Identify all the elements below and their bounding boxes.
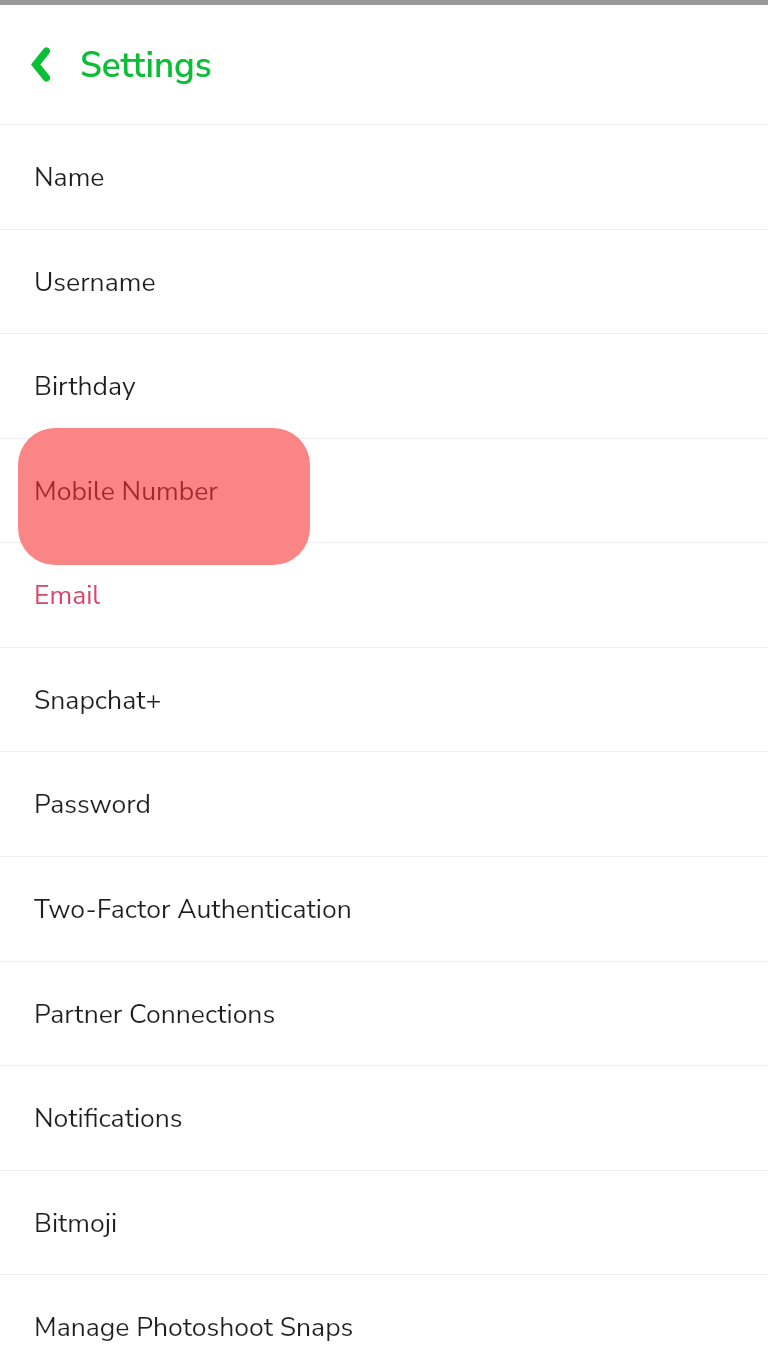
staticText: Two-Factor Authentication [34,891,352,927]
staticText: Settings [80,42,212,90]
staticText: Email [34,577,101,613]
button[interactable]: Snapchat+ [0,647,768,752]
staticText: Username [34,264,156,300]
staticText: Notifications [34,1100,183,1136]
button[interactable]: Username [0,229,768,334]
staticText: Birthday [34,368,136,404]
staticText: Mobile Number [34,473,218,509]
staticText: Bitmoji [34,1205,118,1241]
button[interactable]: Partner Connections [0,961,768,1066]
staticText: Snapchat+ [34,682,162,718]
staticText: Manage Photoshoot Snaps [34,1309,354,1345]
button[interactable]: Bitmoji [0,1170,768,1275]
staticText: Password [34,786,152,822]
button[interactable]: Password [0,751,768,856]
button[interactable]: Manage Photoshoot Snaps [0,1274,768,1365]
staticText: Partner Connections [34,996,276,1032]
button[interactable]: Notifications [0,1065,768,1170]
button[interactable]: Birthday [0,333,768,438]
button[interactable]: Name [0,124,768,229]
button[interactable]: Mobile Number [0,438,768,543]
staticText: Name [34,159,105,195]
button[interactable]: Email [0,542,768,647]
button[interactable]: Back [7,25,75,93]
button[interactable]: Two-Factor Authentication [0,856,768,961]
